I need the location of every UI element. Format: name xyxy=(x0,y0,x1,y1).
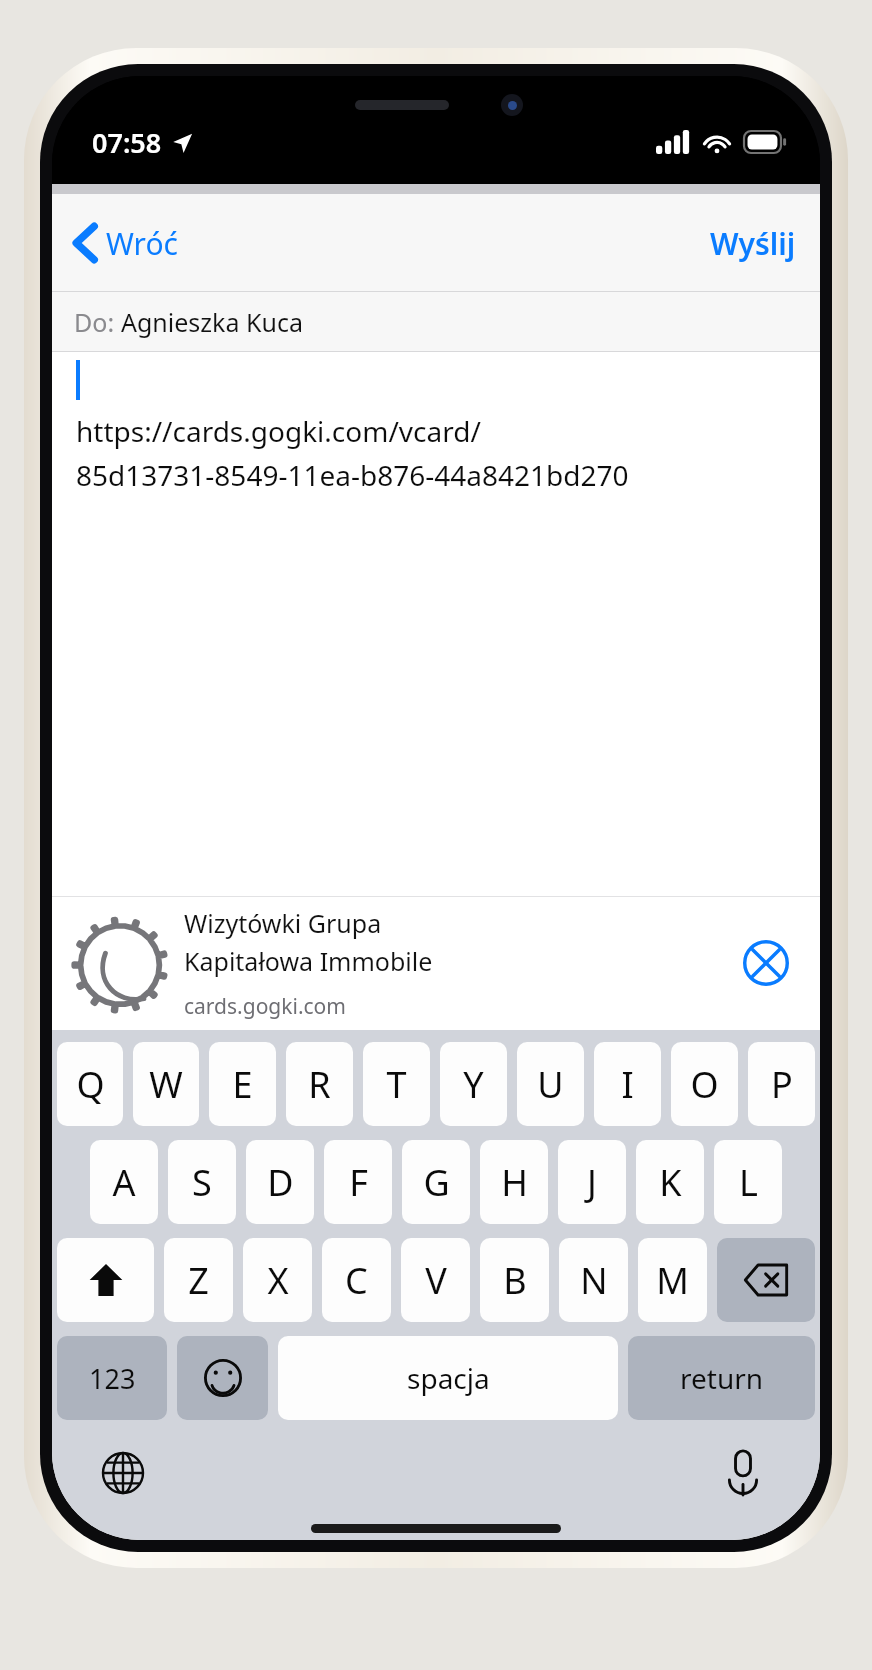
button[interactable]: W xyxy=(133,1042,199,1126)
staticText: https://cards.gogki.com/vcard/ xyxy=(76,412,481,450)
button[interactable]: 123 xyxy=(57,1336,167,1420)
staticText: X xyxy=(267,1256,289,1305)
button[interactable]: Do: xyxy=(52,292,820,352)
button[interactable]: L xyxy=(714,1140,782,1224)
staticText: 07:58 xyxy=(92,124,162,161)
button[interactable]: Dictation xyxy=(712,1442,774,1504)
staticText: Do: xyxy=(74,305,121,339)
staticText: return xyxy=(680,1359,764,1397)
staticText: M xyxy=(656,1256,689,1305)
button[interactable]: spacja xyxy=(278,1336,618,1420)
button[interactable]: T xyxy=(363,1042,430,1126)
button[interactable]: D xyxy=(246,1140,314,1224)
button[interactable]: Z xyxy=(164,1238,233,1322)
button[interactable]: Shift xyxy=(57,1238,154,1322)
staticText: T xyxy=(386,1060,407,1109)
button[interactable]: F xyxy=(324,1140,392,1224)
staticText: 123 xyxy=(89,1360,136,1397)
button[interactable]: E xyxy=(209,1042,276,1126)
button[interactable]: U xyxy=(517,1042,584,1126)
button[interactable]: Y xyxy=(440,1042,507,1126)
staticText: O xyxy=(690,1060,719,1109)
staticText: D xyxy=(267,1158,294,1207)
staticText: J xyxy=(587,1158,597,1207)
staticText: cards.gogki.com xyxy=(184,992,346,1021)
button[interactable]: J xyxy=(558,1140,626,1224)
staticText: L xyxy=(739,1158,758,1207)
staticText: 85d13731-8549-11ea-b876-44a8421bd270 xyxy=(76,456,629,494)
staticText: Y xyxy=(463,1060,484,1109)
staticText: K xyxy=(659,1158,682,1207)
staticText: C xyxy=(345,1256,368,1305)
button[interactable]: A xyxy=(90,1140,158,1224)
staticText: Kapitałowa Immobile xyxy=(184,944,433,978)
button[interactable]: C xyxy=(322,1238,391,1322)
staticText: G xyxy=(423,1158,450,1207)
button[interactable]: Wyślij xyxy=(686,194,820,292)
staticText: Q xyxy=(76,1060,105,1109)
button[interactable]: Backspace xyxy=(717,1238,815,1322)
button[interactable]: Emoji xyxy=(177,1336,268,1420)
staticText: S xyxy=(192,1158,212,1207)
staticText: I xyxy=(621,1060,634,1109)
button[interactable]: R xyxy=(286,1042,353,1126)
staticText: W xyxy=(149,1060,183,1109)
button[interactable]: M xyxy=(638,1238,707,1322)
button[interactable]: return xyxy=(628,1336,815,1420)
button[interactable]: N xyxy=(559,1238,628,1322)
button[interactable]: Q xyxy=(57,1042,123,1126)
button[interactable]: V xyxy=(401,1238,470,1322)
staticText: E xyxy=(232,1060,253,1109)
staticText: U xyxy=(537,1060,564,1109)
button[interactable]: O xyxy=(671,1042,738,1126)
button[interactable]: Wróć xyxy=(52,194,196,292)
button[interactable]: H xyxy=(480,1140,548,1224)
button[interactable]: P xyxy=(748,1042,815,1126)
staticText: B xyxy=(503,1256,527,1305)
staticText: R xyxy=(308,1060,331,1109)
staticText: Agnieszka Kuca xyxy=(121,305,303,339)
button[interactable]: https://cards.gogki.com/vcard/ xyxy=(52,352,820,896)
staticText: V xyxy=(425,1256,447,1305)
button[interactable]: G xyxy=(402,1140,470,1224)
button[interactable]: B xyxy=(480,1238,549,1322)
staticText: P xyxy=(771,1060,793,1109)
button[interactable]: K xyxy=(636,1140,704,1224)
button[interactable]: X xyxy=(243,1238,312,1322)
staticText: N xyxy=(580,1256,608,1305)
staticText: Wyślij xyxy=(710,223,796,264)
staticText: H xyxy=(501,1158,528,1207)
button[interactable]: Change keyboard language xyxy=(92,1442,154,1504)
button[interactable]: Wizytówki Grupa xyxy=(52,896,820,1030)
button[interactable]: I xyxy=(594,1042,661,1126)
staticText: Wizytówki Grupa xyxy=(184,906,382,940)
staticText: spacja xyxy=(407,1359,490,1397)
button[interactable]: Remove link preview xyxy=(738,935,794,991)
staticText: F xyxy=(349,1158,368,1207)
staticText: Z xyxy=(188,1256,209,1305)
staticText: Wróć xyxy=(106,223,178,264)
staticText: A xyxy=(112,1158,136,1207)
button[interactable]: S xyxy=(168,1140,236,1224)
